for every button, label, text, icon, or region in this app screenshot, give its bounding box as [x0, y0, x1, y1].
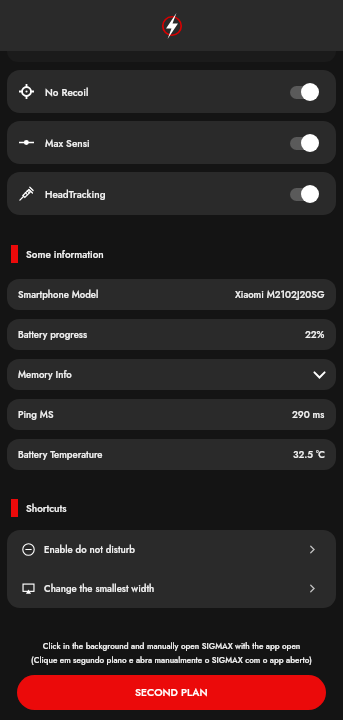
button[interactable]: SECOND PLAN [17, 675, 326, 710]
staticText: Shortcuts [26, 501, 67, 515]
staticText: Smartphone Model [18, 288, 99, 302]
button[interactable]: Memory Info [7, 359, 336, 390]
staticText: Max Sensi [45, 136, 90, 150]
staticText: SECOND PLAN [135, 685, 208, 700]
button[interactable]: HeadTracking [7, 172, 336, 215]
button[interactable]: Battery Temperature [7, 439, 336, 470]
staticText: HeadTracking [45, 187, 106, 201]
other: Expand Memory Info [312, 367, 327, 382]
button[interactable]: Enable do not disturb [7, 530, 336, 569]
button[interactable]: No Recoil [7, 70, 336, 113]
button[interactable]: Battery progress [7, 319, 336, 350]
staticText: Click in the background and manually ope… [0, 640, 343, 652]
button[interactable]: Change the smallest width [7, 569, 336, 608]
staticText: Enable do not disturb [44, 543, 135, 557]
staticText: (Clique em segundo plano e abra manualme… [0, 654, 343, 666]
staticText: Battery progress [18, 328, 87, 342]
staticText: 290 ms [292, 408, 325, 422]
staticText: 22% [305, 328, 325, 342]
staticText: 32.5 °C [293, 448, 325, 462]
button[interactable]: Smartphone Model [7, 279, 336, 310]
staticText: Memory Info [18, 368, 72, 382]
staticText: Ping MS [18, 408, 54, 422]
staticText: No Recoil [45, 85, 89, 99]
staticText: Some information [26, 247, 104, 261]
staticText: Xiaomi M2102J20SG [235, 288, 325, 302]
staticText: Battery Temperature [18, 448, 103, 462]
other: App logo [159, 13, 185, 39]
staticText: Change the smallest width [44, 582, 155, 596]
button[interactable]: Ping MS [7, 399, 336, 430]
button[interactable]: Max Sensi [7, 121, 336, 164]
